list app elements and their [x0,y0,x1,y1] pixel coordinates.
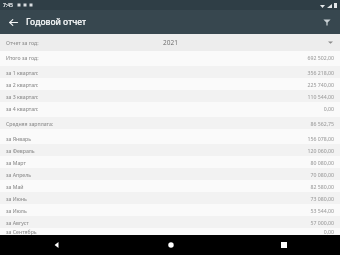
staticText: 356 218,00 [307,69,334,76]
staticText: за Август [6,219,29,226]
button[interactable]: Back [5,14,21,30]
staticText: 82 580,00 [310,183,334,190]
button[interactable]: за 1 квартал: [0,66,340,78]
staticText: за Январь [6,135,32,142]
button[interactable]: Средняя зарплата: [0,117,340,129]
button[interactable]: за Июнь [0,192,340,204]
button[interactable]: за 2 квартал: [0,78,340,90]
button[interactable]: за Апрель [0,168,340,180]
staticText: Итого за год: [6,54,39,61]
button[interactable]: Filter [319,14,335,30]
staticText: за Июль [6,207,27,214]
button[interactable]: Home [114,235,227,255]
button[interactable]: Итого за год: [0,51,340,63]
staticText: за 2 квартал: [6,81,39,88]
button[interactable]: за Февраль [0,144,340,156]
staticText: 120 060,00 [307,147,334,154]
staticText: за Февраль [6,147,35,154]
staticText: за Июнь [6,195,27,202]
staticText: за 3 квартал: [6,93,39,100]
button[interactable]: Recent apps [227,235,340,255]
staticText: 0,00 [323,228,334,235]
button[interactable]: за Май [0,180,340,192]
staticText: 70 080,00 [310,171,334,178]
staticText: Отчет за год: [6,39,39,46]
staticText: 692 502,00 [307,54,334,61]
button[interactable]: за 3 квартал: [0,90,340,102]
button[interactable]: за Январь [0,132,340,144]
button[interactable]: за Август [0,216,340,228]
staticText: 156 078,00 [307,135,334,142]
staticText: 110 544,00 [307,93,334,100]
staticText: 7:45 [3,2,13,9]
button[interactable]: за 4 квартал: [0,102,340,114]
staticText: за 4 квартал: [6,105,39,112]
button[interactable]: за Сентябрь [0,228,340,235]
staticText: за Март [6,159,26,166]
staticText: Годовой отчет [26,16,87,28]
staticText: 225 740,00 [307,81,334,88]
button[interactable]: Back [0,235,114,255]
staticText: за Апрель [6,171,32,178]
button[interactable]: за Март [0,156,340,168]
staticText: 86 562,75 [310,120,334,127]
staticText: Средняя зарплата: [6,120,54,127]
button[interactable]: Отчет за год: [0,34,340,51]
staticText: 57 000,00 [310,219,334,226]
staticText: за Май [6,183,24,190]
staticText: 53 544,00 [310,207,334,214]
staticText: 73 080,00 [310,195,334,202]
button[interactable]: за Июль [0,204,340,216]
staticText: за Сентябрь [6,228,37,235]
staticText: за 1 квартал: [6,69,39,76]
staticText: 80 080,00 [310,159,334,166]
staticText: 0,00 [323,105,334,112]
staticText: 2021 [163,38,178,47]
